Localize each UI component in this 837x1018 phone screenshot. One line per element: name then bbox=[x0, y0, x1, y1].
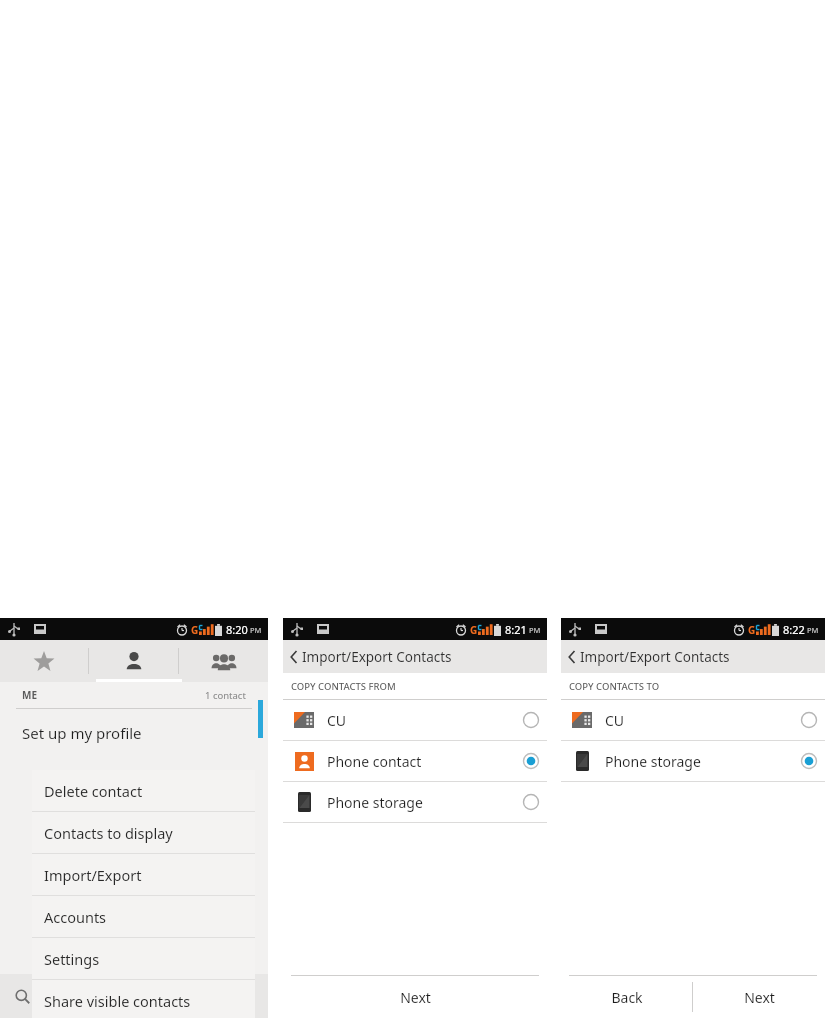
button[interactable]: Settings bbox=[32, 938, 255, 980]
button[interactable]: Tab bbox=[179, 640, 268, 682]
button[interactable]: Accounts bbox=[32, 896, 255, 938]
button[interactable]: Set up my profile bbox=[0, 709, 268, 757]
button[interactable]: Share visible contacts bbox=[32, 980, 255, 1018]
staticText: Import/Export Contacts bbox=[580, 648, 730, 666]
staticText: Set up my profile bbox=[22, 723, 142, 743]
button[interactable]: Back bbox=[561, 976, 692, 1018]
staticText: Contacts to display bbox=[44, 823, 173, 843]
staticText: Share visible contacts bbox=[44, 991, 191, 1011]
button[interactable]: Import/Export bbox=[32, 854, 255, 896]
button[interactable]: CU bbox=[561, 700, 825, 741]
staticText: G bbox=[470, 623, 478, 637]
staticText: PM bbox=[807, 625, 819, 635]
staticText: G bbox=[748, 623, 756, 637]
button[interactable]: Import/Export Contacts bbox=[283, 640, 547, 673]
button[interactable]: Phone storage bbox=[283, 782, 547, 823]
staticText: Settings bbox=[44, 949, 100, 969]
button[interactable]: Tab bbox=[89, 640, 178, 682]
staticText: Phone contact bbox=[327, 752, 422, 771]
staticText: Phone storage bbox=[327, 793, 423, 812]
staticText: Next bbox=[744, 988, 775, 1007]
staticText: Phone storage bbox=[605, 752, 701, 771]
staticText: Delete contact bbox=[44, 781, 143, 801]
staticText: CU bbox=[327, 711, 347, 730]
button[interactable]: Tab bbox=[0, 640, 88, 682]
staticText: 1 contact bbox=[205, 689, 246, 702]
staticText: Back bbox=[611, 988, 643, 1007]
staticText: Next bbox=[400, 988, 431, 1007]
button[interactable]: Contacts to display bbox=[32, 812, 255, 854]
staticText: PM bbox=[529, 625, 541, 635]
staticText: Import/Export bbox=[44, 865, 142, 885]
staticText: Import/Export Contacts bbox=[302, 648, 452, 666]
button[interactable]: Import/Export Contacts bbox=[561, 640, 825, 673]
staticText: 8:22 bbox=[783, 622, 805, 637]
staticText: COPY CONTACTS FROM bbox=[291, 680, 396, 693]
button[interactable]: Delete contact bbox=[32, 770, 255, 812]
staticText: COPY CONTACTS TO bbox=[569, 680, 660, 693]
button[interactable]: Phone storage bbox=[561, 741, 825, 782]
staticText: 8:20 bbox=[226, 622, 248, 637]
button[interactable]: Next bbox=[693, 976, 825, 1018]
button[interactable]: CU bbox=[283, 700, 547, 741]
staticText: Accounts bbox=[44, 907, 107, 927]
button[interactable]: Phone contact bbox=[283, 741, 547, 782]
button[interactable]: Next bbox=[283, 976, 547, 1018]
button[interactable]: Search bbox=[0, 974, 44, 1018]
staticText: PM bbox=[250, 625, 262, 635]
staticText: 8:21 bbox=[505, 622, 527, 637]
button[interactable]: More options bbox=[224, 974, 268, 1018]
staticText: G bbox=[191, 623, 199, 637]
staticText: ME bbox=[22, 688, 38, 702]
staticText: CU bbox=[605, 711, 625, 730]
